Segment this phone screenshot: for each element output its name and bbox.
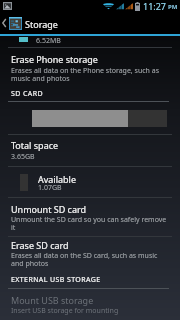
staticText: Unmount SD card [11, 203, 87, 215]
staticText: PM [168, 3, 178, 11]
button[interactable] [0, 237, 180, 272]
button[interactable] [0, 167, 180, 197]
button[interactable]: Navigate up [0, 12, 180, 34]
staticText: SD CARD [11, 89, 43, 99]
staticText: Storage [25, 18, 58, 30]
staticText: Erases all data on the SD card, such as … [11, 251, 158, 268]
staticText: Erase Phone storage [11, 53, 98, 65]
staticText: Erases all data on the Phone storage, su… [11, 66, 160, 83]
staticText: EXTERNAL USB STORAGE [11, 275, 101, 285]
button[interactable] [0, 135, 180, 166]
staticText: Total space [11, 139, 59, 151]
button[interactable] [0, 289, 180, 320]
button[interactable] [0, 48, 180, 87]
staticText: Unmount the SD card so you can safely re… [11, 215, 167, 232]
button[interactable] [0, 198, 180, 236]
staticText: Available [38, 173, 76, 185]
staticText: 3.65GB [11, 152, 35, 162]
staticText: 6.52MB [36, 36, 61, 46]
button[interactable]: 6.52MB [0, 36, 180, 47]
staticText: 11:27 [143, 0, 167, 12]
staticText: Erase SD card [11, 239, 69, 251]
staticText: 1.07GB [38, 183, 62, 193]
staticText: Insert USB storage for mounting [11, 306, 119, 316]
staticText: Mount USB storage [11, 294, 94, 306]
